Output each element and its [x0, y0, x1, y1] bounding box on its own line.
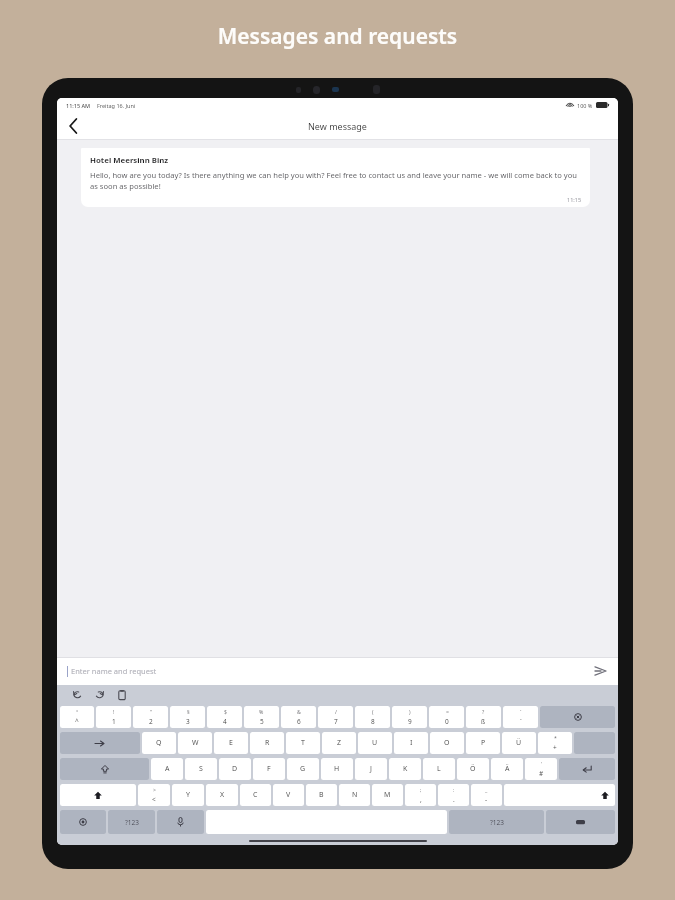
button[interactable]: Ä — [491, 758, 523, 780]
staticText: ´ — [520, 717, 522, 726]
button[interactable]: > — [138, 784, 170, 806]
button[interactable]: Backspace — [540, 706, 615, 728]
staticText: O — [444, 738, 450, 748]
button[interactable]: J — [355, 758, 387, 780]
button[interactable]: Hide keyboard — [546, 810, 615, 834]
button[interactable]: Emoji — [60, 810, 106, 834]
staticText: ; — [420, 786, 422, 793]
button[interactable]: % — [244, 706, 279, 728]
staticText: / — [335, 708, 337, 715]
staticText: < — [152, 795, 156, 804]
button[interactable]: S — [185, 758, 217, 780]
staticText: ! — [113, 708, 115, 715]
button[interactable]: V — [273, 784, 304, 806]
button[interactable]: _ — [471, 784, 502, 806]
button[interactable]: L — [423, 758, 455, 780]
staticText: 8 — [371, 717, 375, 726]
staticText: ?123 — [125, 818, 139, 827]
button[interactable]: M — [372, 784, 403, 806]
button[interactable]: ) — [392, 706, 427, 728]
button[interactable]: A — [151, 758, 183, 780]
button[interactable]: C — [240, 784, 271, 806]
button[interactable]: ` — [503, 706, 538, 728]
staticText: J — [370, 764, 372, 774]
button[interactable]: ; — [405, 784, 436, 806]
button[interactable]: Back — [62, 115, 84, 137]
button[interactable]: F — [253, 758, 285, 780]
button[interactable]: Shift — [504, 784, 615, 806]
button[interactable]: P — [466, 732, 500, 754]
staticText: : — [453, 786, 455, 793]
button[interactable]: E — [214, 732, 248, 754]
button[interactable]: W — [178, 732, 212, 754]
button[interactable]: § — [170, 706, 205, 728]
button[interactable]: : — [438, 784, 469, 806]
staticText: = — [446, 708, 449, 715]
button[interactable]: Paste — [113, 686, 130, 703]
button[interactable]: T — [286, 732, 320, 754]
button[interactable]: = — [429, 706, 464, 728]
button[interactable]: " — [133, 706, 168, 728]
staticText: - — [485, 795, 488, 804]
button[interactable]: Enter name and request — [57, 657, 618, 685]
button[interactable]: Q — [142, 732, 176, 754]
button[interactable]: B — [306, 784, 337, 806]
button[interactable]: * — [538, 732, 572, 754]
staticText: # — [539, 769, 544, 778]
button[interactable]: N — [339, 784, 370, 806]
button[interactable]: Z — [322, 732, 356, 754]
staticText: 3 — [186, 717, 190, 726]
button[interactable]: R — [250, 732, 284, 754]
staticText: R — [265, 738, 270, 748]
button[interactable]: Y — [172, 784, 204, 806]
button[interactable]: / — [318, 706, 353, 728]
button[interactable]: H — [321, 758, 353, 780]
button[interactable]: ?123 — [449, 810, 544, 834]
staticText: Ä — [505, 764, 510, 774]
button[interactable]: ' — [525, 758, 557, 780]
staticText: 11:15 — [567, 196, 582, 203]
staticText: Y — [186, 790, 190, 800]
button[interactable]: I — [394, 732, 428, 754]
button[interactable]: Enter — [559, 758, 615, 780]
button[interactable]: ? — [466, 706, 501, 728]
staticText: ? — [482, 708, 485, 715]
button[interactable]: Ü — [502, 732, 536, 754]
staticText: A — [165, 764, 170, 774]
staticText: ( — [372, 708, 374, 715]
staticText: * — [554, 734, 557, 741]
staticText: K — [403, 764, 408, 774]
staticText: § — [187, 708, 190, 715]
staticText: P — [481, 738, 486, 748]
button[interactable]: ( — [355, 706, 390, 728]
button[interactable]: U — [358, 732, 392, 754]
button[interactable]: Tab — [60, 732, 140, 754]
staticText: L — [437, 764, 441, 774]
button[interactable]: & — [281, 706, 316, 728]
button[interactable]: ?123 — [108, 810, 155, 834]
staticText: 1 — [112, 717, 116, 726]
button[interactable]: D — [219, 758, 251, 780]
button[interactable]: Ö — [457, 758, 489, 780]
staticText: 11:15 AM — [66, 102, 91, 109]
staticText: Ö — [470, 764, 476, 774]
button[interactable]: Caps lock — [60, 758, 149, 780]
button[interactable]: O — [430, 732, 464, 754]
button[interactable]: Voice input — [157, 810, 204, 834]
button[interactable]: Redo — [91, 686, 108, 703]
button[interactable]: Undo — [69, 686, 86, 703]
staticText: E — [229, 738, 233, 748]
button[interactable]: X — [206, 784, 238, 806]
button[interactable]: Send — [592, 663, 608, 679]
button[interactable]: ° — [60, 706, 94, 728]
staticText: Freitag 16. Juni — [97, 102, 136, 109]
staticText: H — [334, 764, 340, 774]
button[interactable]: Shift — [60, 784, 136, 806]
button[interactable]: ! — [96, 706, 131, 728]
button[interactable]: $ — [207, 706, 242, 728]
button[interactable]: K — [389, 758, 421, 780]
button[interactable]: Hotel Meersinn Binz — [81, 148, 590, 207]
button[interactable]: G — [287, 758, 319, 780]
